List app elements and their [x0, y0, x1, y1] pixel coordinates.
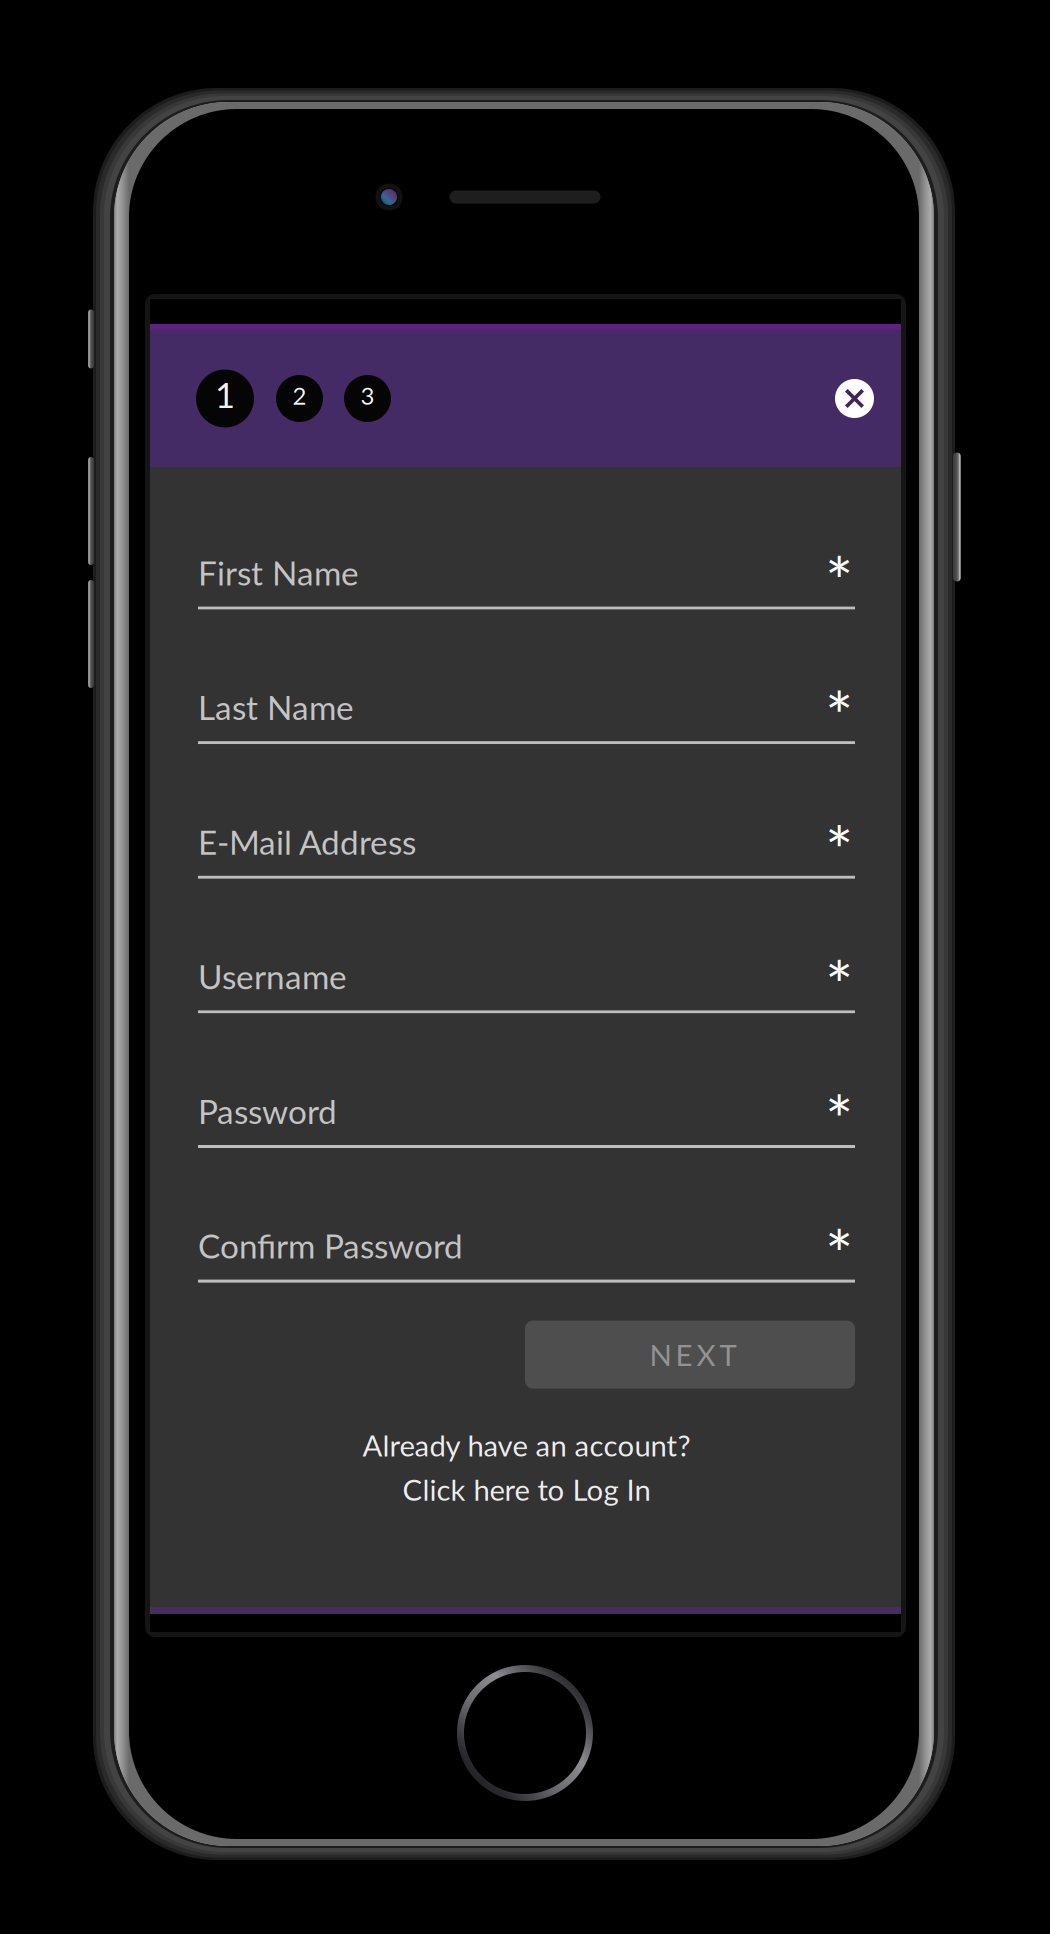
button[interactable]: Confirm Password — [198, 1148, 855, 1283]
button[interactable]: Username — [198, 879, 855, 1013]
staticText: Username — [198, 956, 347, 996]
staticText: Password — [198, 1091, 337, 1131]
button[interactable]: Last Name — [198, 610, 855, 744]
staticText: 3 — [360, 381, 374, 410]
staticText: 1 — [215, 374, 235, 415]
button[interactable]: Step 2 — [276, 375, 323, 422]
staticText: 2 — [292, 381, 306, 410]
staticText: Already have an account? — [362, 1428, 690, 1463]
button[interactable]: First Name — [198, 475, 855, 610]
staticText: * — [825, 809, 853, 889]
staticText: Confirm Password — [198, 1226, 463, 1266]
staticText: * — [825, 944, 853, 1024]
staticText: * — [825, 540, 853, 620]
button[interactable]: Already have an account? — [198, 1428, 855, 1507]
button[interactable]: Step 1 — [196, 369, 254, 427]
staticText: First Name — [198, 553, 359, 593]
staticText: E-Mail Address — [198, 822, 416, 862]
staticText: * — [825, 1079, 853, 1159]
button[interactable]: Step 3 — [344, 375, 391, 422]
button[interactable]: E-Mail Address — [198, 744, 855, 879]
staticText: * — [825, 675, 853, 755]
staticText: Last Name — [198, 687, 354, 727]
button[interactable]: Password — [198, 1013, 855, 1148]
button[interactable]: NEXT — [525, 1321, 855, 1389]
staticText: Click here to Log In — [402, 1472, 650, 1507]
staticText: NEXT — [649, 1337, 736, 1372]
staticText: * — [825, 1213, 853, 1293]
button[interactable]: Close — [835, 379, 874, 418]
